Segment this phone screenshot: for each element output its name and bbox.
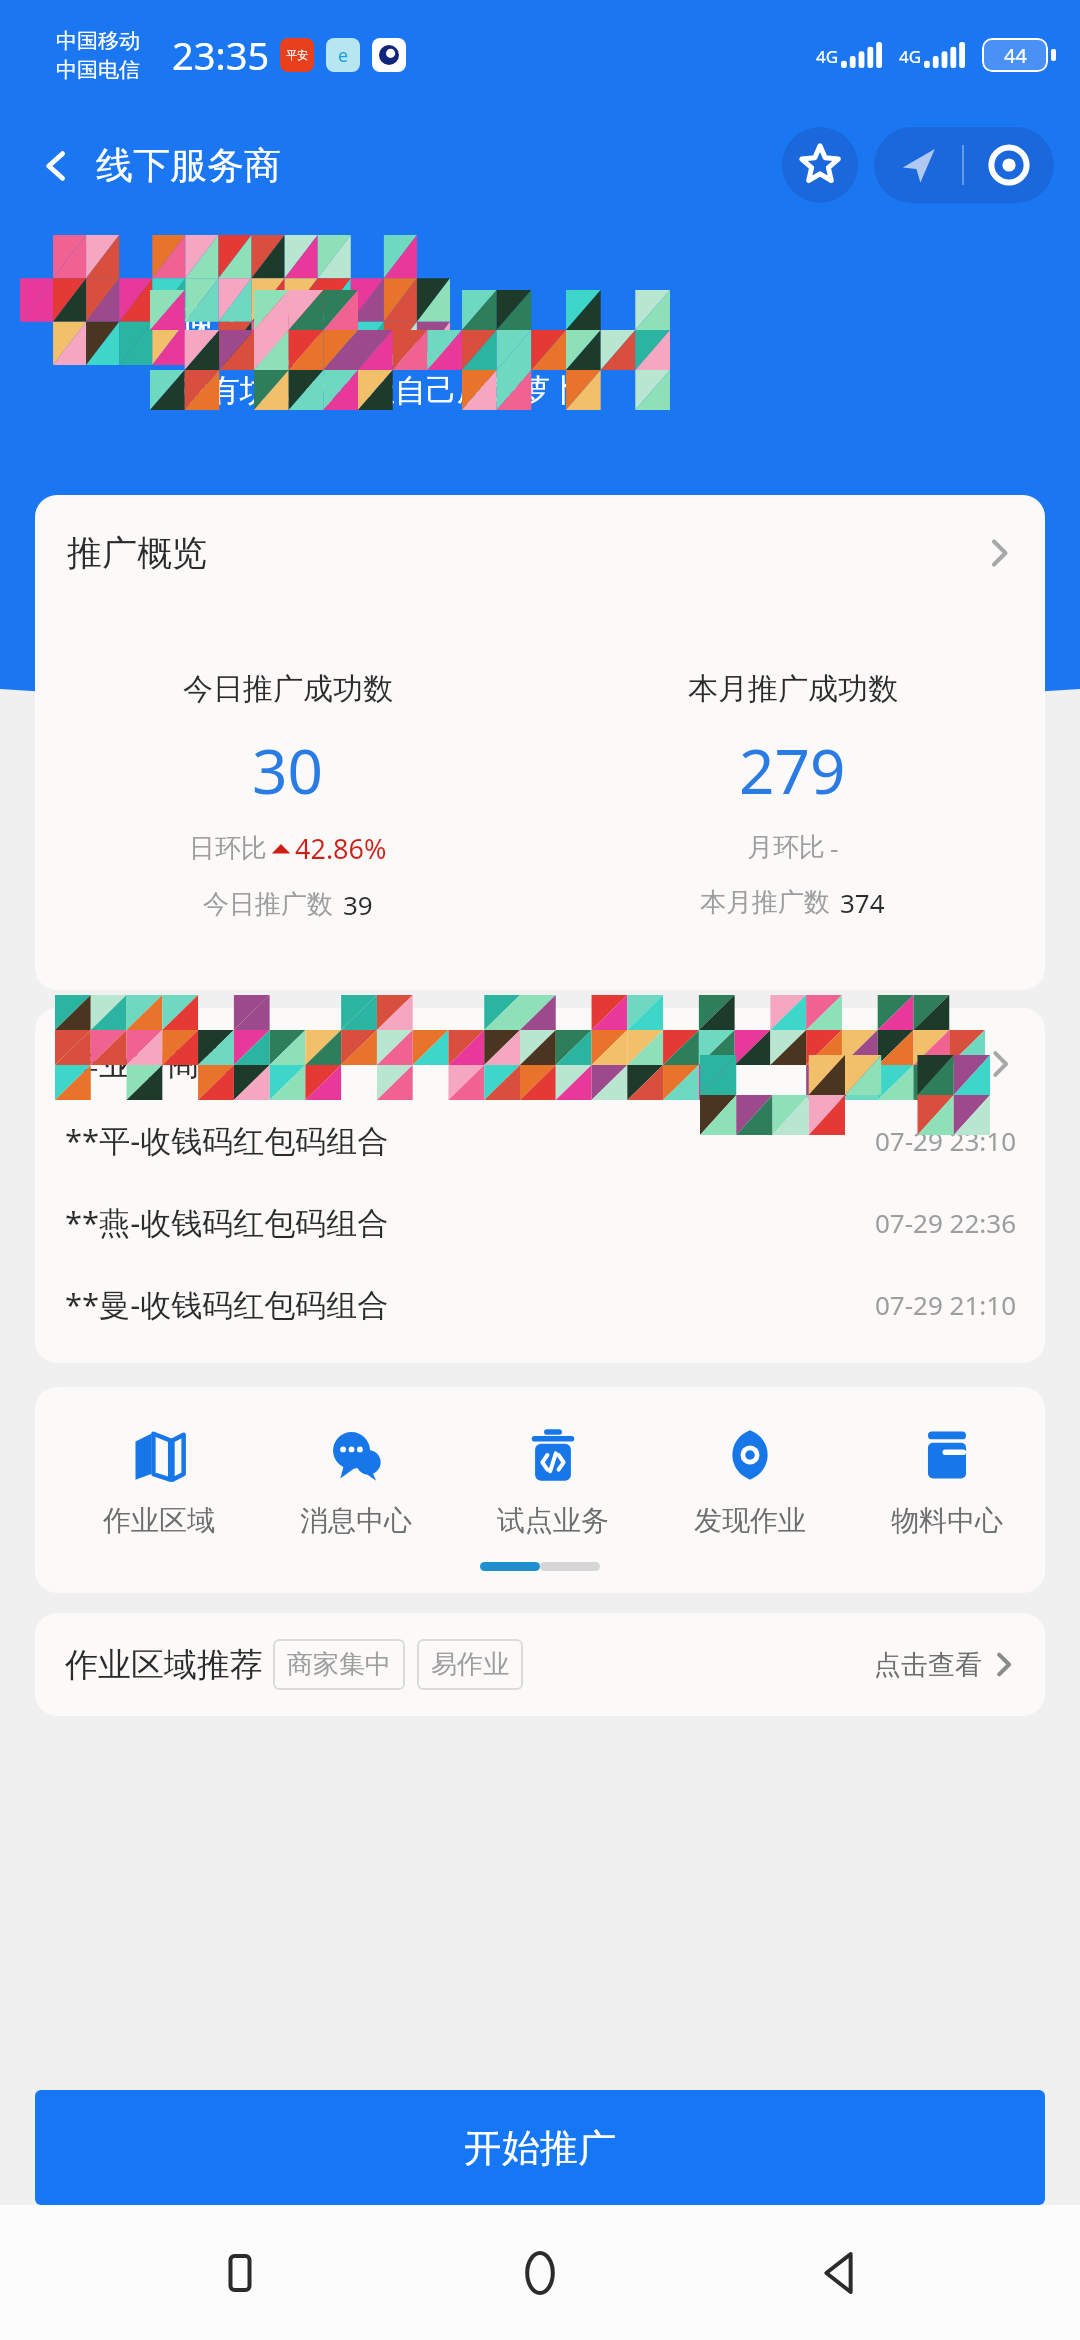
button[interactable]: 作业区域推荐 bbox=[35, 1613, 1045, 1716]
staticText: e bbox=[338, 43, 349, 68]
staticText: 发现作业 bbox=[694, 1503, 806, 1538]
button[interactable]: 消息中心 bbox=[257, 1421, 454, 1544]
staticText: 没有坑，就先让自己成为萝卜 bbox=[178, 371, 581, 410]
button[interactable]: Home bbox=[480, 2213, 600, 2333]
staticText: 晚上好 bbox=[178, 300, 286, 345]
button[interactable]: Favorite bbox=[782, 127, 858, 203]
staticText: 4G bbox=[816, 45, 839, 68]
staticText: 30 bbox=[252, 728, 323, 812]
staticText: 279 bbox=[739, 728, 846, 812]
button[interactable]: **燕-收钱码红包码组合 bbox=[65, 1201, 1017, 1243]
staticText: 商家集中 bbox=[287, 1648, 391, 1681]
staticText: 39 bbox=[343, 887, 373, 922]
staticText: 今日推广数 bbox=[203, 888, 333, 921]
staticText: 线下服务商 bbox=[96, 142, 281, 189]
button[interactable]: 推广概览 bbox=[35, 495, 1045, 990]
staticText: **平-收钱码红包码组合 bbox=[65, 1119, 389, 1161]
staticText: 4G bbox=[899, 45, 922, 68]
button[interactable]: 试点业务 bbox=[454, 1421, 651, 1544]
staticText: 23:35 bbox=[172, 29, 270, 81]
staticText: 试点业务 bbox=[497, 1503, 609, 1538]
button[interactable]: Navigate bbox=[874, 127, 962, 203]
staticText: 易作业 bbox=[431, 1648, 509, 1681]
staticText: 推广概览 bbox=[67, 531, 207, 575]
staticText: 44 bbox=[1004, 42, 1027, 69]
button[interactable]: 作业区域 bbox=[61, 1421, 257, 1544]
staticText: 作业区域推荐 bbox=[65, 1644, 263, 1686]
staticText: 平安 bbox=[286, 48, 308, 62]
staticText: 07-29 21:10 bbox=[875, 1287, 1017, 1322]
button[interactable]: Back bbox=[780, 2213, 900, 2333]
staticText: **燕-收钱码红包码组合 bbox=[65, 1201, 389, 1243]
staticText: - bbox=[830, 830, 839, 865]
staticText: 42.86% bbox=[295, 830, 387, 867]
other: Back bbox=[38, 148, 74, 184]
staticText: 374 bbox=[840, 885, 885, 920]
staticText: 消息中心 bbox=[300, 1503, 412, 1538]
staticText: 作业中商家 bbox=[65, 1042, 235, 1085]
staticText: 今日推广成功数 bbox=[183, 670, 393, 708]
button[interactable]: Location bbox=[964, 127, 1054, 203]
button[interactable]: **平-收钱码红包码组合 bbox=[65, 1119, 1017, 1161]
staticText: 月环比 bbox=[747, 831, 825, 864]
staticText: 作业区域 bbox=[103, 1503, 215, 1538]
staticText: 中国移动 bbox=[56, 28, 140, 54]
button[interactable]: Back bbox=[30, 134, 289, 197]
button[interactable]: 物料中心 bbox=[848, 1421, 1045, 1544]
button[interactable]: 发现作业 bbox=[651, 1421, 848, 1544]
staticText: 日环比 bbox=[189, 832, 267, 865]
button[interactable]: Recents bbox=[180, 2213, 300, 2333]
staticText: **曼-收钱码红包码组合 bbox=[65, 1283, 389, 1325]
button[interactable]: **曼-收钱码红包码组合 bbox=[65, 1283, 1017, 1325]
staticText: 本月推广成功数 bbox=[688, 670, 898, 708]
button[interactable]: 开始推广 bbox=[35, 2090, 1045, 2205]
staticText: 开始推广 bbox=[464, 2124, 616, 2172]
staticText: 07-29 22:36 bbox=[875, 1205, 1017, 1240]
button[interactable]: 作业中商家 bbox=[65, 1042, 1017, 1085]
staticText: 物料中心 bbox=[891, 1503, 1003, 1538]
staticText: 本月推广数 bbox=[700, 886, 830, 919]
staticText: 中国电信 bbox=[56, 57, 140, 83]
staticText: 07-29 23:10 bbox=[875, 1123, 1017, 1158]
staticText: 点击查看 bbox=[874, 1648, 982, 1682]
